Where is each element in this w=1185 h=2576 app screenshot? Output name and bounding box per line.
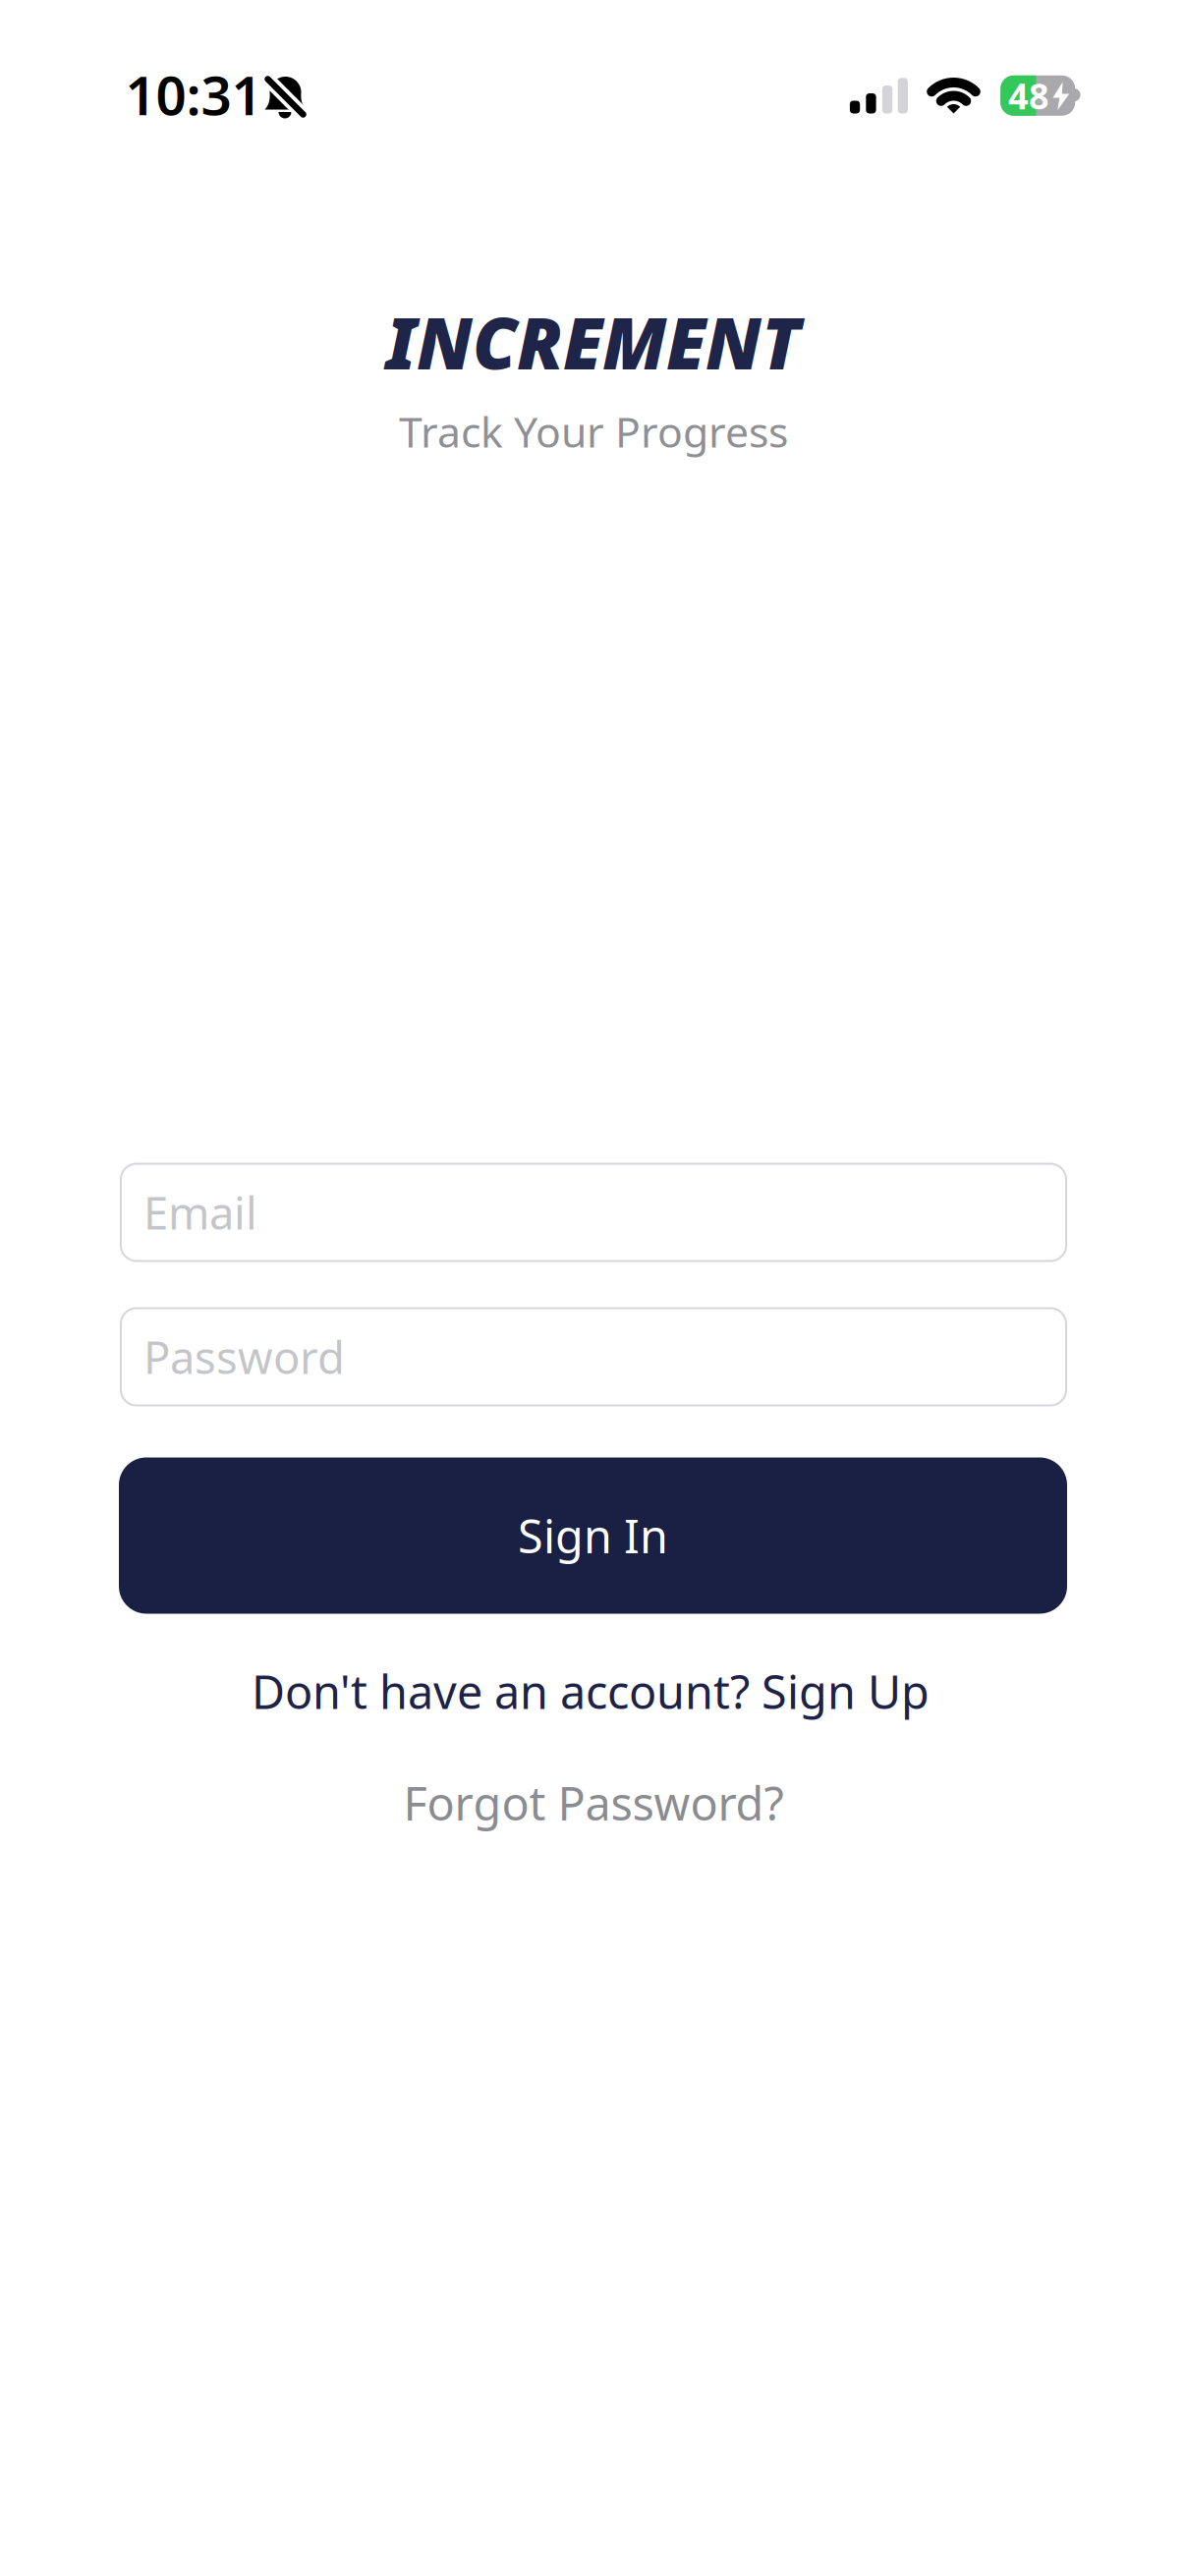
- staticText: Password: [143, 1327, 345, 1386]
- button[interactable]: Email: [120, 1163, 1067, 1262]
- button[interactable]: Password: [120, 1307, 1067, 1406]
- staticText: Sign In: [518, 1505, 668, 1566]
- staticText: INCREMENT: [386, 295, 801, 389]
- staticText: Track Your Progress: [399, 403, 788, 459]
- button[interactable]: Don't have an account? Sign Up: [252, 1661, 930, 1722]
- staticText: 10:31: [125, 59, 262, 130]
- button[interactable]: Forgot Password?: [403, 1772, 784, 1833]
- staticText: Don't have an account? Sign Up: [252, 1661, 930, 1722]
- staticText: Email: [143, 1183, 257, 1242]
- staticText: 48: [1008, 72, 1049, 119]
- button[interactable]: Sign In: [119, 1457, 1067, 1614]
- staticText: Forgot Password?: [403, 1772, 784, 1833]
